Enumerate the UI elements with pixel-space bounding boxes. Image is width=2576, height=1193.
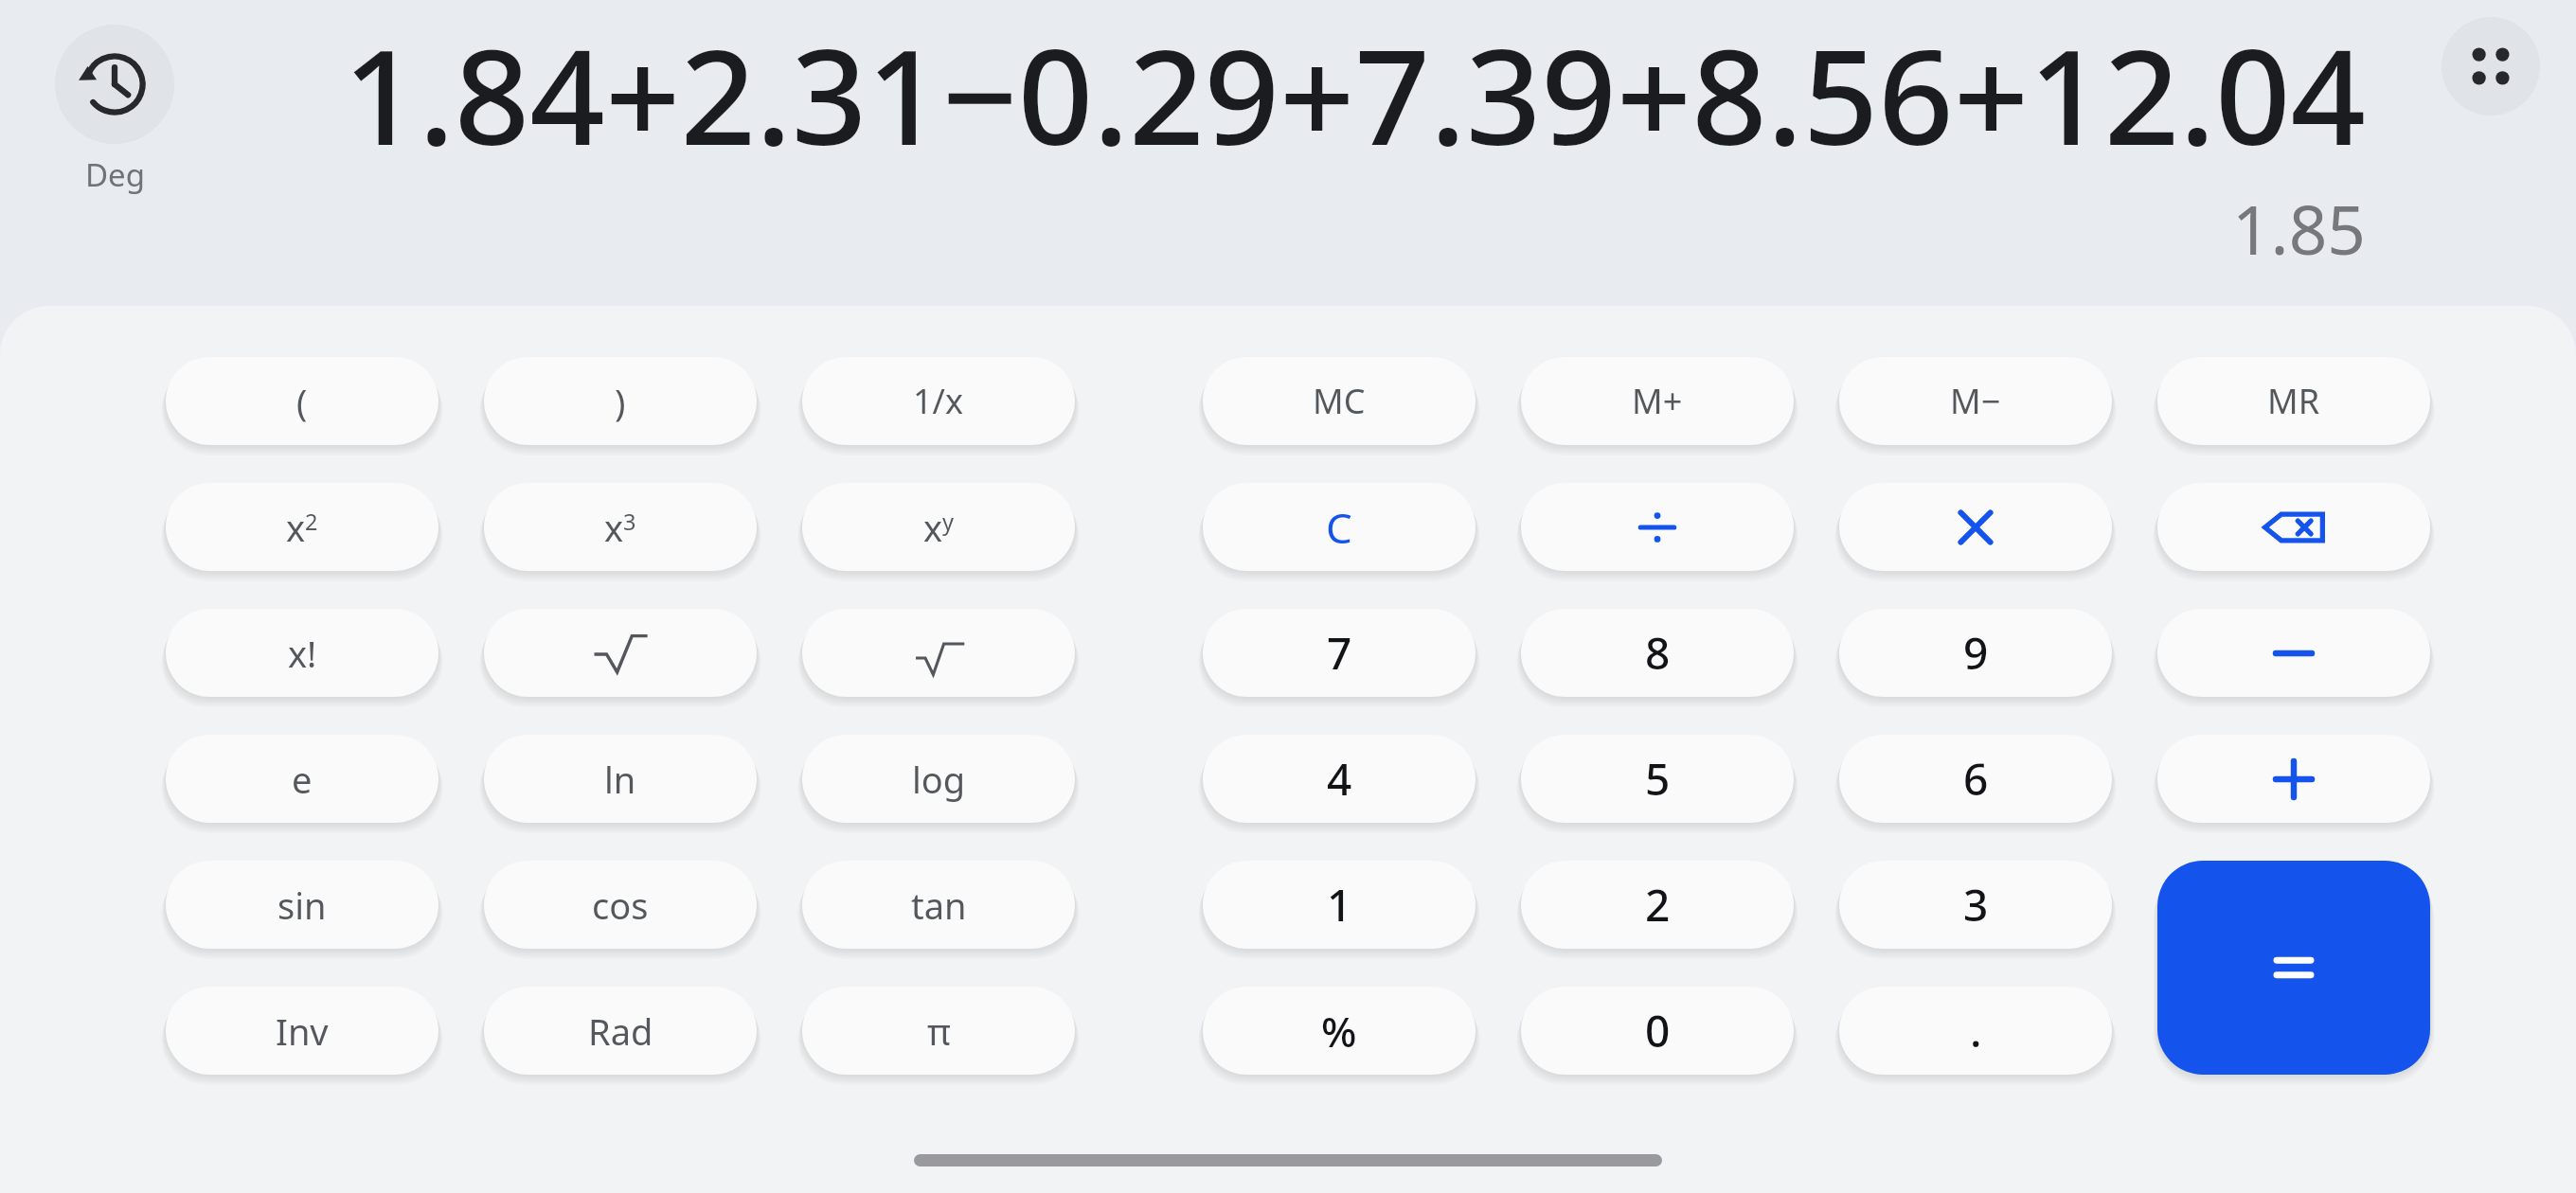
button[interactable]: MR — [2157, 357, 2430, 445]
staticText: ln — [604, 755, 636, 804]
staticText: x! — [288, 629, 317, 678]
button[interactable]: ( — [166, 357, 438, 445]
staticText: tan — [911, 881, 967, 930]
button[interactable]: Plus — [2157, 735, 2430, 823]
button[interactable]: x2 — [166, 483, 438, 571]
button[interactable]: Multiply — [1839, 483, 2112, 571]
button[interactable]: x! — [166, 609, 438, 697]
staticText: 7 — [1327, 623, 1352, 683]
button[interactable]: C — [1203, 483, 1476, 571]
staticText: 0 — [1645, 1001, 1671, 1060]
staticText: MR — [2267, 378, 2320, 424]
button[interactable]: sin — [166, 861, 438, 949]
staticText: 8 — [1645, 623, 1671, 683]
staticText: π — [927, 1006, 951, 1056]
button[interactable]: More options — [2442, 17, 2540, 116]
staticText: ) — [615, 377, 626, 426]
staticText: 9 — [1963, 623, 1989, 683]
staticText: 1 — [1327, 875, 1352, 935]
button[interactable]: π — [802, 987, 1075, 1075]
button[interactable]: Rad — [484, 987, 757, 1075]
button[interactable]: . — [1839, 987, 2112, 1075]
button[interactable]: 9 — [1839, 609, 2112, 697]
staticText: x3 — [604, 503, 636, 552]
button[interactable]: Backspace — [2157, 483, 2430, 571]
staticText: C — [1326, 499, 1352, 556]
staticText: Inv — [276, 1006, 329, 1056]
staticText: xy — [923, 503, 955, 552]
button[interactable]: Square root — [484, 609, 757, 697]
button[interactable]: 6 — [1839, 735, 2112, 823]
button[interactable]: 4 — [1203, 735, 1476, 823]
staticText: MC — [1313, 378, 1366, 424]
staticText: 1.84+2.31−0.29+7.39+8.56+12.04−30 — [284, 4, 2366, 183]
staticText: cos — [592, 881, 649, 930]
staticText: 5 — [1645, 749, 1671, 809]
button[interactable]: Inv — [166, 987, 438, 1075]
button[interactable]: Nth root — [802, 609, 1075, 697]
staticText: 6 — [1963, 749, 1989, 809]
button[interactable]: MC — [1203, 357, 1476, 445]
staticText: sin — [277, 881, 327, 930]
button[interactable]: 7 — [1203, 609, 1476, 697]
button[interactable]: 5 — [1521, 735, 1794, 823]
staticText: . — [1970, 1001, 1982, 1060]
staticText: 1.85 — [2232, 183, 2366, 275]
button[interactable]: 3 — [1839, 861, 2112, 949]
staticText: x2 — [286, 503, 318, 552]
button[interactable]: x3 — [484, 483, 757, 571]
button[interactable]: Divide — [1521, 483, 1794, 571]
staticText: 2 — [1645, 875, 1671, 935]
button[interactable]: Minus — [2157, 609, 2430, 697]
staticText: Rad — [588, 1006, 653, 1056]
staticText: 1/x — [913, 378, 964, 424]
button[interactable]: History, Degrees mode — [49, 19, 180, 202]
staticText: M+ — [1632, 378, 1683, 424]
staticText: 3 — [1963, 875, 1989, 935]
button[interactable]: e — [166, 735, 438, 823]
button[interactable]: log — [802, 735, 1075, 823]
staticText: M− — [1950, 378, 2001, 424]
button[interactable]: 8 — [1521, 609, 1794, 697]
staticText: % — [1321, 1003, 1357, 1059]
button[interactable]: % — [1203, 987, 1476, 1075]
button[interactable]: ) — [484, 357, 757, 445]
staticText: 4 — [1327, 749, 1352, 809]
button[interactable]: xy — [802, 483, 1075, 571]
button[interactable]: M− — [1839, 357, 2112, 445]
staticText: Deg — [85, 153, 145, 196]
button[interactable]: 1 — [1203, 861, 1476, 949]
button[interactable]: Equals — [2157, 861, 2430, 1075]
staticText: e — [292, 755, 313, 804]
staticText: log — [912, 755, 966, 804]
staticText: ( — [296, 377, 308, 426]
button[interactable]: ln — [484, 735, 757, 823]
button[interactable]: M+ — [1521, 357, 1794, 445]
button[interactable]: 0 — [1521, 987, 1794, 1075]
button[interactable]: 1/x — [802, 357, 1075, 445]
button[interactable]: 2 — [1521, 861, 1794, 949]
button[interactable]: cos — [484, 861, 757, 949]
button[interactable]: tan — [802, 861, 1075, 949]
